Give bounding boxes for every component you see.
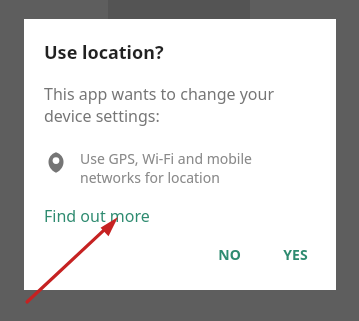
staticText: Use GPS, Wi-Fi and mobile networks for l… xyxy=(80,149,252,187)
staticText: Use location? xyxy=(44,40,164,65)
staticText: NO xyxy=(218,245,241,264)
other: Location pin xyxy=(46,150,66,174)
button[interactable]: YES xyxy=(269,237,322,272)
button[interactable]: Find out more xyxy=(44,205,150,227)
staticText: Find out more xyxy=(44,205,150,227)
button[interactable]: NO xyxy=(204,237,255,272)
staticText: This app wants to change your device set… xyxy=(44,83,275,127)
staticText: YES xyxy=(283,245,308,264)
